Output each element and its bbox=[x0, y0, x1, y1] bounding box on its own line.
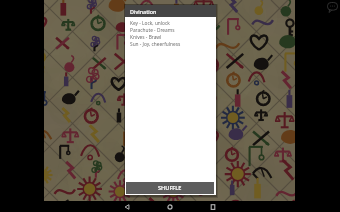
staticText: SHUFFLE bbox=[158, 184, 182, 192]
button[interactable]: Messages bbox=[325, 0, 340, 15]
staticText: Key - Lock, unlock bbox=[130, 20, 170, 27]
staticText: Parachute - Dreams bbox=[130, 27, 175, 34]
staticText: Divination bbox=[130, 8, 157, 15]
staticText: Knives - Brawl bbox=[130, 34, 162, 41]
button[interactable]: Home bbox=[162, 201, 178, 212]
staticText: Sun - Joy, cheerfulness bbox=[130, 41, 181, 48]
button[interactable]: Back bbox=[119, 201, 135, 212]
button[interactable]: SHUFFLE bbox=[126, 182, 214, 194]
button[interactable]: Recents bbox=[205, 201, 221, 212]
